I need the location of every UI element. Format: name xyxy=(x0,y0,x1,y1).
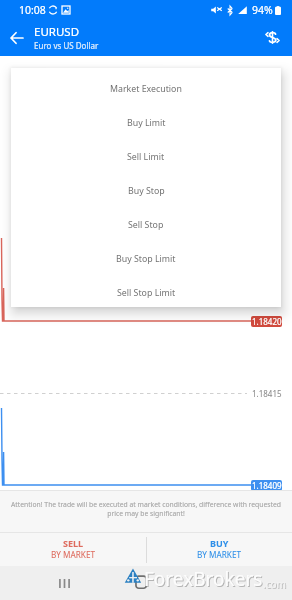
staticText: Attention! The trade will be executed at… xyxy=(5,500,287,518)
button[interactable]: Currency exchange xyxy=(252,19,292,56)
staticText: SELL xyxy=(63,537,84,549)
staticText: BY MARKET xyxy=(197,549,242,560)
button[interactable]: Buy Stop Limit xyxy=(11,239,281,273)
button[interactable]: Buy Stop xyxy=(11,171,281,205)
button[interactable]: Sell Stop xyxy=(11,205,281,239)
staticText: Sell Stop xyxy=(128,219,164,231)
staticText: 94% xyxy=(252,3,273,17)
staticText: .com xyxy=(263,577,286,591)
button[interactable]: Sell Stop Limit xyxy=(11,273,281,307)
staticText: Euro vs US Dollar xyxy=(34,40,99,51)
button[interactable]: Sell Limit xyxy=(11,137,281,171)
button[interactable]: Buy Limit xyxy=(11,103,281,137)
button[interactable]: SELL xyxy=(0,533,146,566)
staticText: EURUSD xyxy=(34,24,80,40)
staticText: 1.18409 xyxy=(252,480,282,491)
staticText: Sell Stop Limit xyxy=(117,287,176,299)
staticText: Market Execution xyxy=(110,83,182,95)
button[interactable]: BUY xyxy=(146,533,292,566)
staticText: Buy Stop xyxy=(128,185,165,197)
staticText: ForexBrokers xyxy=(145,567,264,593)
staticText: 1.18415 xyxy=(252,388,282,399)
staticText: 1.18420 xyxy=(252,316,282,327)
button[interactable]: Back xyxy=(0,19,34,56)
staticText: 10:08 xyxy=(19,3,46,17)
staticText: Buy Stop Limit xyxy=(116,253,176,265)
staticText: .com xyxy=(264,578,287,592)
staticText: Buy Limit xyxy=(127,117,166,129)
staticText: BUY xyxy=(210,537,229,549)
staticText: BY MARKET xyxy=(51,549,96,560)
staticText: ForexBrokers xyxy=(144,566,263,592)
button[interactable]: Recent apps xyxy=(52,571,76,595)
button[interactable]: Market Execution xyxy=(11,68,281,103)
staticText: Sell Limit xyxy=(127,151,165,163)
